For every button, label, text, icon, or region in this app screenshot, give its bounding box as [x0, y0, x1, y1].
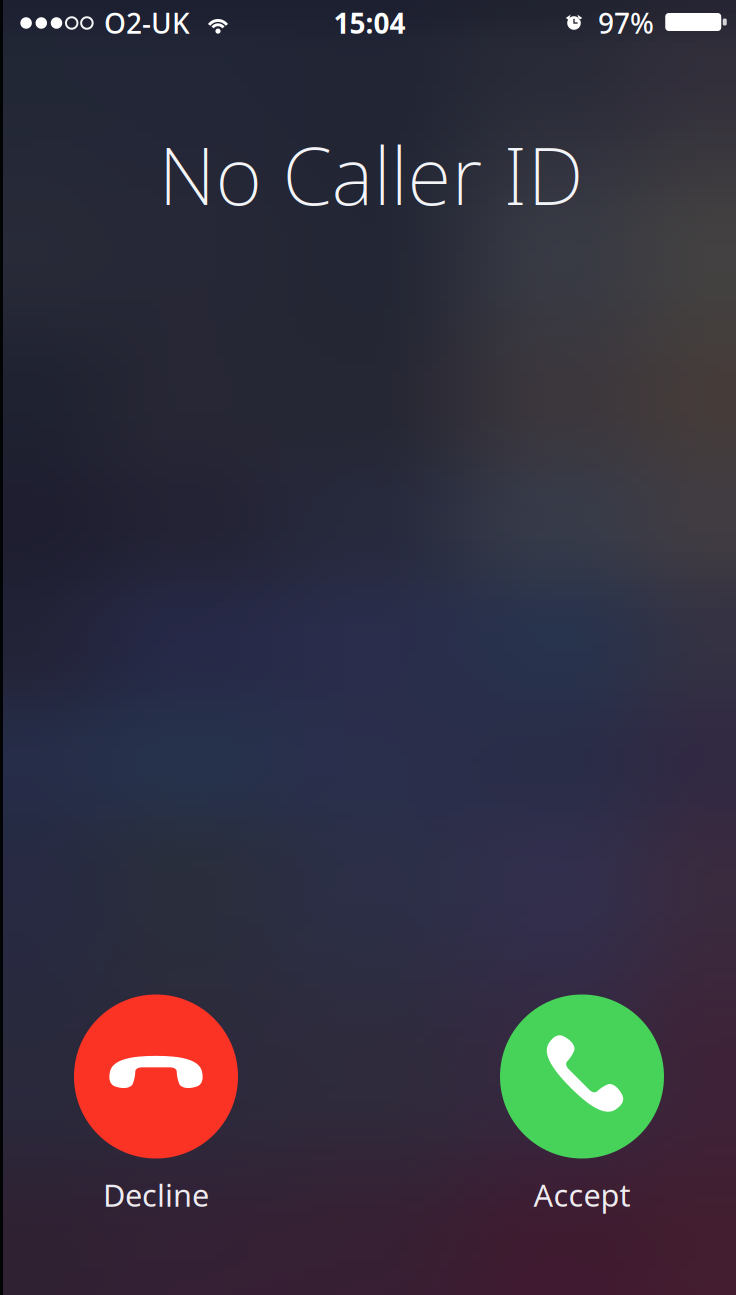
staticText: O2-UK	[104, 4, 190, 42]
button[interactable]: Accept	[477, 994, 687, 1224]
staticText: 15:04	[333, 4, 405, 42]
staticText: Decline	[103, 1174, 209, 1215]
staticText: 97%	[598, 4, 654, 42]
staticText: Accept	[533, 1174, 630, 1215]
button[interactable]: Decline	[51, 994, 261, 1224]
staticText: No Caller ID	[158, 121, 583, 227]
